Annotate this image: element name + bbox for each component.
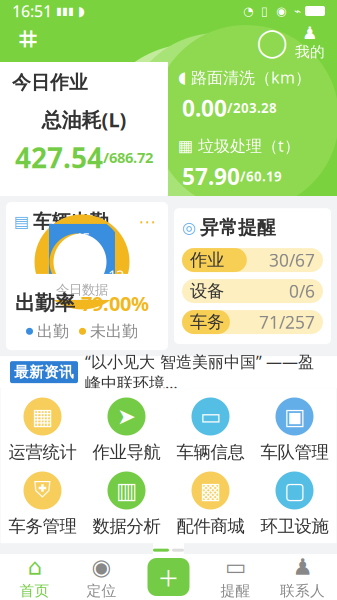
staticText: 定位	[86, 582, 116, 600]
button[interactable]: ▭	[202, 555, 269, 599]
button[interactable]: 新增	[135, 555, 202, 599]
staticText: ◗	[78, 3, 85, 18]
staticText: 今日数据	[56, 282, 108, 298]
staticText: 57.90	[182, 161, 240, 191]
staticText: ⋯	[138, 212, 155, 231]
staticText: ▣	[284, 404, 305, 429]
button[interactable]: 更多	[134, 212, 160, 230]
staticText: 45	[74, 228, 90, 247]
staticText: 首页	[19, 582, 49, 600]
button[interactable]: 车务	[182, 310, 323, 334]
staticText: 配件商城	[176, 515, 244, 537]
staticText: ♟	[292, 554, 312, 580]
staticText: /686.72	[103, 148, 153, 167]
staticText: 作业导航	[92, 441, 160, 463]
button[interactable]: ▥	[84, 471, 168, 537]
staticText: 79.00%	[81, 290, 149, 316]
staticText: ▭	[200, 404, 221, 429]
staticText: 提醒	[220, 582, 250, 600]
button[interactable]: ♟	[291, 22, 329, 62]
staticText: 石门县项目车辆信息审核中	[43, 594, 219, 600]
staticText: 路面清洗（km）	[191, 67, 311, 88]
staticText: 运营统计	[8, 441, 76, 463]
staticText: ▦	[178, 136, 193, 155]
button[interactable]: 扫一扫	[8, 22, 48, 62]
staticText: ▤	[14, 212, 29, 231]
staticText: 车务管理	[8, 515, 76, 537]
staticText: 0/6	[289, 279, 315, 302]
staticText: 车辆信息	[176, 441, 244, 463]
button[interactable]: ▩	[168, 471, 252, 537]
button[interactable]: ♟	[269, 555, 336, 599]
button[interactable]: ▣	[252, 397, 336, 463]
staticText: 联系人	[280, 582, 325, 600]
staticText: ▩	[200, 478, 221, 503]
staticText: ▦	[32, 404, 53, 429]
staticText: 427.54	[15, 139, 103, 176]
staticText: ⌂	[27, 554, 41, 580]
staticText: 出勤	[37, 321, 69, 341]
staticText: ▢	[284, 478, 305, 503]
staticText: 12	[108, 265, 124, 285]
staticText: 车务	[190, 311, 224, 333]
staticText: “以小见大 智造美丽中国” ——盈峰中联环境…	[85, 351, 314, 393]
staticText: ◯	[256, 26, 287, 58]
staticText: 71/257	[259, 310, 315, 333]
staticText: /203.28	[227, 99, 277, 117]
button[interactable]: ▦	[0, 397, 84, 463]
staticText: ◔ ▯ ◉ ⌁	[243, 4, 301, 18]
staticText: ◎	[182, 218, 196, 237]
staticText: 数据分析	[92, 515, 160, 537]
button[interactable]: ➤	[84, 397, 168, 463]
button[interactable]: ◉	[68, 555, 135, 599]
button[interactable]: ⛨	[0, 471, 84, 537]
staticText: 今日作业	[12, 71, 88, 94]
staticText: ⛨	[15, 593, 28, 600]
button[interactable]: 最新资讯	[0, 356, 337, 388]
button[interactable]: 搜索	[253, 22, 291, 62]
staticText: 30/67	[269, 248, 315, 271]
staticText: ◖	[178, 68, 186, 86]
staticText: 车队管理	[260, 441, 328, 463]
staticText: 设备	[190, 280, 224, 302]
staticText: +	[158, 554, 178, 600]
staticText: ⌗	[18, 22, 38, 62]
staticText: 未出勤	[90, 321, 138, 341]
staticText: 环卫设施	[260, 515, 328, 537]
staticText: 车辆信息审核	[43, 570, 145, 592]
staticText: 总油耗(L)	[41, 106, 126, 133]
staticText: ▮▮▮	[56, 5, 74, 17]
staticText: 出勤率	[15, 291, 75, 315]
staticText: ➤	[117, 404, 136, 429]
staticText: 2019-12-26 16:51:26	[246, 570, 328, 600]
button[interactable]: 设备	[182, 279, 323, 303]
staticText: 异常提醒	[200, 216, 276, 239]
staticText: 16:51	[12, 0, 52, 22]
staticText: ◉	[91, 554, 111, 580]
staticText: ♟	[302, 23, 318, 43]
button[interactable]: ⌂	[1, 555, 68, 599]
staticText: 作业	[190, 249, 224, 271]
button[interactable]: ⛨	[0, 563, 337, 600]
button[interactable]: 作业	[182, 248, 323, 272]
staticText: 0.00	[182, 93, 227, 123]
staticText: 我的	[295, 43, 325, 61]
staticText: ▥	[116, 478, 137, 503]
staticText: 最新资讯	[14, 363, 74, 381]
button[interactable]: ▭	[168, 397, 252, 463]
staticText: 垃圾处理（t）	[198, 135, 300, 156]
staticText: 车辆出勤	[33, 210, 109, 233]
staticText: ▭	[225, 554, 246, 580]
staticText: /60.19	[240, 167, 282, 185]
button[interactable]: ▢	[252, 471, 336, 537]
staticText: ⛨	[34, 479, 51, 501]
